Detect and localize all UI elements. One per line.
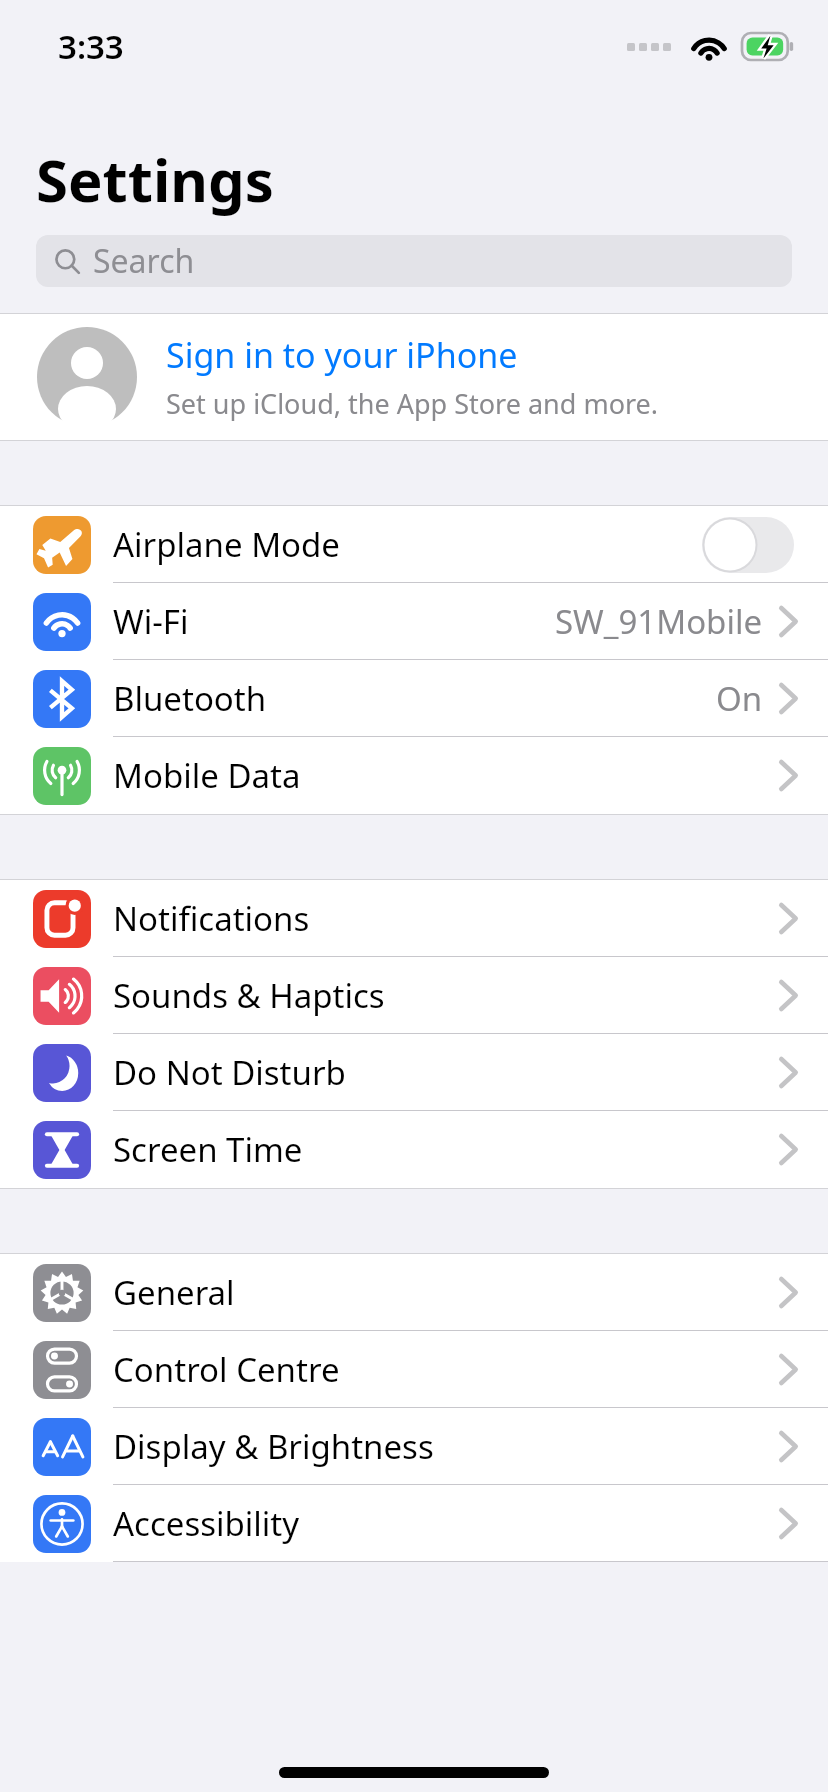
button[interactable]: Airplane Mode toggle, off [702,517,794,573]
staticText: Airplane Mode [113,522,340,567]
staticText: Sign in to your iPhone [166,332,518,378]
button[interactable]: Airplane Mode [0,506,828,583]
staticText: Mobile Data [113,753,301,798]
staticText: Sounds & Haptics [113,973,385,1018]
staticText: Screen Time [113,1127,303,1172]
staticText: Bluetooth [113,676,267,721]
staticText: Display & Brightness [113,1424,434,1469]
staticText: Set up iCloud, the App Store and more. [166,385,659,422]
button[interactable]: Screen Time [0,1111,828,1188]
staticText: On [716,676,763,721]
button[interactable]: Sounds & Haptics [0,957,828,1034]
button[interactable]: Bluetooth [0,660,828,737]
staticText: General [113,1270,235,1315]
staticText: Settings [36,140,274,219]
staticText: Notifications [113,896,310,941]
staticText: SW_91Mobile [555,599,763,644]
button[interactable]: Control Centre [0,1331,828,1408]
button[interactable]: Display & Brightness [0,1408,828,1485]
button[interactable]: Wi-Fi [0,583,828,660]
staticText: Do Not Disturb [113,1050,346,1095]
staticText: Wi-Fi [113,599,189,644]
staticText: Control Centre [113,1347,340,1392]
button[interactable]: Mobile Data [0,737,828,814]
staticText: 3:33 [58,24,124,69]
button[interactable]: Accessibility [0,1485,828,1562]
staticText: Search [93,239,195,283]
button[interactable]: Search [36,235,792,287]
staticText: Accessibility [113,1501,300,1546]
button[interactable]: Do Not Disturb [0,1034,828,1111]
button[interactable]: General [0,1254,828,1331]
button[interactable]: Notifications [0,880,828,957]
button[interactable]: Sign in to your iPhone [0,314,828,440]
